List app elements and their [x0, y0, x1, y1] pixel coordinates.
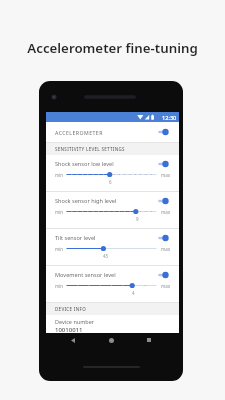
- button[interactable]: Recent apps: [142, 333, 156, 347]
- staticText: Shock sensor low level: [55, 160, 114, 168]
- staticText: min: [55, 283, 64, 289]
- staticText: max: [161, 246, 171, 252]
- staticText: Shock sensor high level: [55, 197, 117, 205]
- staticText: SENSITIVITY LEVEL SETTINGS: [55, 146, 125, 152]
- button[interactable]: Shock sensor low level: [46, 155, 179, 192]
- staticText: Device number: [55, 318, 95, 325]
- staticText: min: [55, 209, 64, 215]
- staticText: max: [161, 283, 171, 289]
- button[interactable]: Device number: [46, 315, 179, 333]
- staticText: DEVICE INFO: [55, 306, 86, 312]
- staticText: 9: [136, 216, 139, 222]
- staticText: Tilt sensor level: [55, 234, 96, 242]
- button[interactable]: Toggle sensor: [158, 233, 170, 243]
- button[interactable]: Toggle sensor: [158, 196, 170, 206]
- staticText: max: [161, 209, 171, 215]
- staticText: 4: [132, 290, 135, 296]
- button[interactable]: Back: [66, 333, 80, 347]
- button[interactable]: Shock sensor high level: [46, 192, 179, 229]
- button[interactable]: Toggle sensor: [158, 127, 170, 137]
- staticText: 12:30: [162, 114, 177, 122]
- staticText: min: [55, 172, 64, 178]
- staticText: 45: [103, 253, 109, 259]
- staticText: 10010011: [55, 326, 83, 334]
- staticText: Accelerometer fine-tuning: [0, 39, 225, 57]
- button[interactable]: Tilt sensor level: [46, 229, 179, 266]
- button[interactable]: Toggle sensor: [158, 270, 170, 280]
- button[interactable]: ACCELEROMETER: [46, 122, 179, 142]
- staticText: ACCELEROMETER: [55, 129, 103, 136]
- button[interactable]: Home: [104, 333, 118, 347]
- staticText: min: [55, 246, 64, 252]
- button[interactable]: Toggle sensor: [158, 159, 170, 169]
- staticText: 6: [109, 179, 112, 185]
- staticText: max: [161, 172, 171, 178]
- staticText: Movement sensor level: [55, 271, 116, 279]
- button[interactable]: Movement sensor level: [46, 266, 179, 303]
